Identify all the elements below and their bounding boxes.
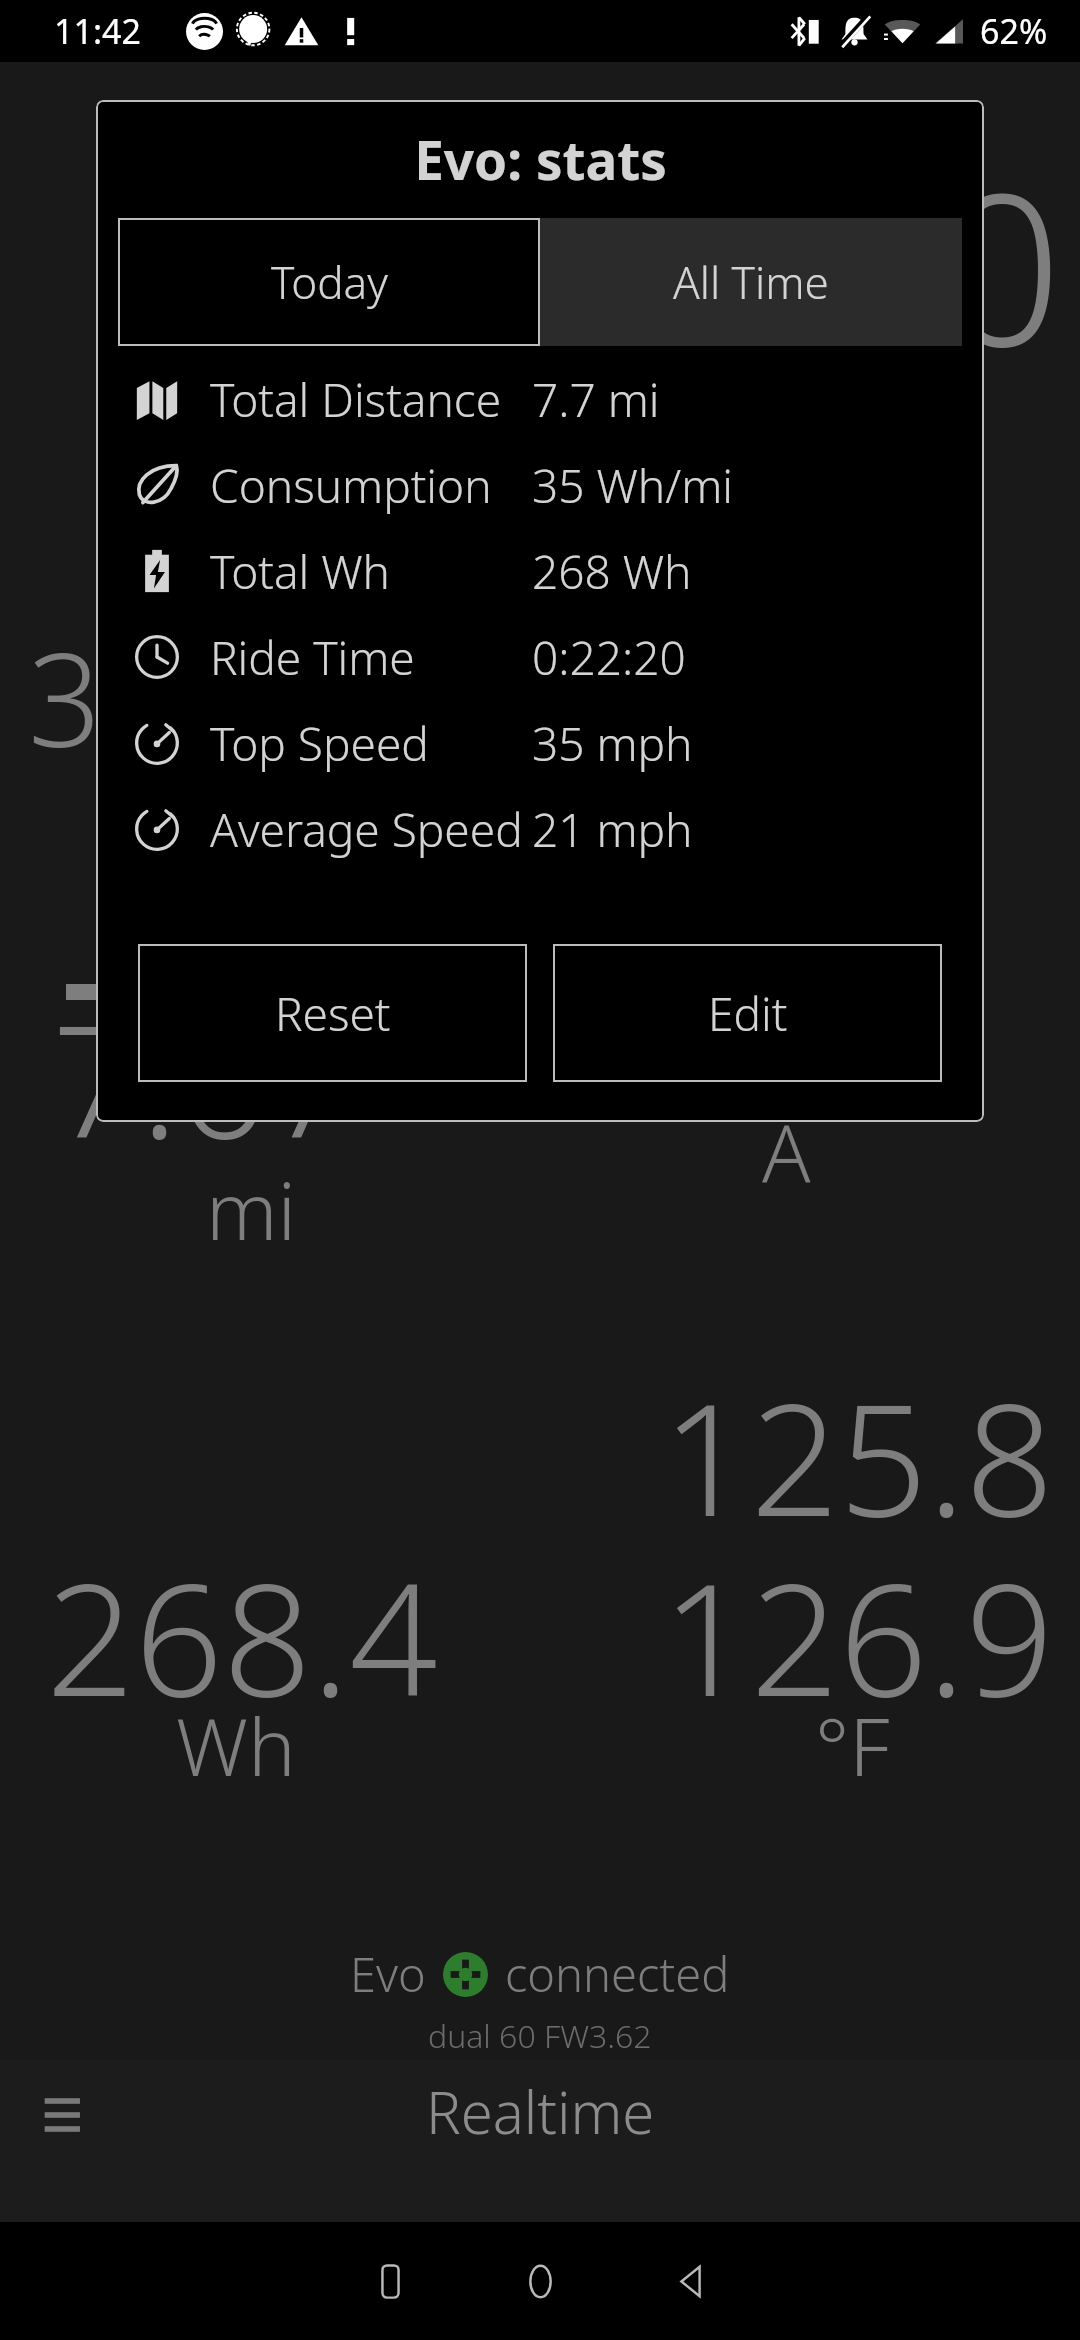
button[interactable]: Edit	[553, 944, 942, 1082]
staticText: 268.4	[46, 1530, 438, 1741]
button[interactable]: Menu	[22, 2066, 120, 2164]
staticText: 0:22:20	[532, 626, 686, 689]
staticText: Today	[271, 252, 388, 312]
button[interactable]: Total Wh	[96, 528, 984, 614]
staticText: 7.67	[52, 972, 356, 1183]
staticText: 125.8	[662, 1350, 1054, 1561]
button[interactable]: Home	[465, 2234, 615, 2329]
staticText: Wh	[176, 1690, 296, 1799]
button[interactable]: Back	[615, 2234, 765, 2329]
staticText: 126.9	[662, 1530, 1054, 1741]
staticText: 7.7 mi	[532, 368, 660, 431]
staticText: Total Distance	[210, 368, 532, 431]
staticText: A	[762, 1097, 811, 1206]
staticText: 3	[28, 610, 102, 784]
button[interactable]: Reset	[138, 944, 527, 1082]
button[interactable]: Total Distance	[96, 356, 984, 442]
staticText: Edit	[708, 982, 788, 1045]
staticText: Reset	[275, 982, 391, 1045]
staticText: 62%	[980, 8, 1048, 54]
staticText: 268 Wh	[532, 540, 692, 603]
button[interactable]: Today	[118, 218, 540, 346]
staticText: dual 60 FW3.62	[428, 2014, 652, 2058]
button[interactable]: Recents	[315, 2234, 465, 2329]
staticText: Realtime	[426, 2072, 655, 2151]
button[interactable]: All Time	[540, 218, 962, 346]
staticText: All Time	[673, 252, 829, 312]
staticText: 21 mph	[532, 798, 693, 861]
staticText: 0	[942, 122, 1062, 408]
button[interactable]: Top Speed	[96, 700, 984, 786]
staticText: 35 Wh/mi	[532, 454, 733, 517]
staticText: Average Speed	[210, 798, 532, 861]
staticText: Evo	[350, 1942, 426, 2006]
staticText: connected	[505, 1942, 730, 2006]
staticText: Ride Time	[210, 626, 532, 689]
staticText: 11:42	[54, 8, 141, 54]
staticText: Evo: stats	[414, 123, 667, 195]
staticText: mi	[206, 1154, 296, 1263]
button[interactable]: Consumption	[96, 442, 984, 528]
staticText: 35 mph	[532, 712, 693, 775]
staticText: Total Wh	[210, 540, 532, 603]
staticText: Consumption	[210, 454, 532, 517]
button[interactable]: Ride Time	[96, 614, 984, 700]
staticText: °F	[815, 1690, 890, 1799]
staticText: Top Speed	[210, 712, 532, 775]
button[interactable]: Average Speed	[96, 786, 984, 872]
